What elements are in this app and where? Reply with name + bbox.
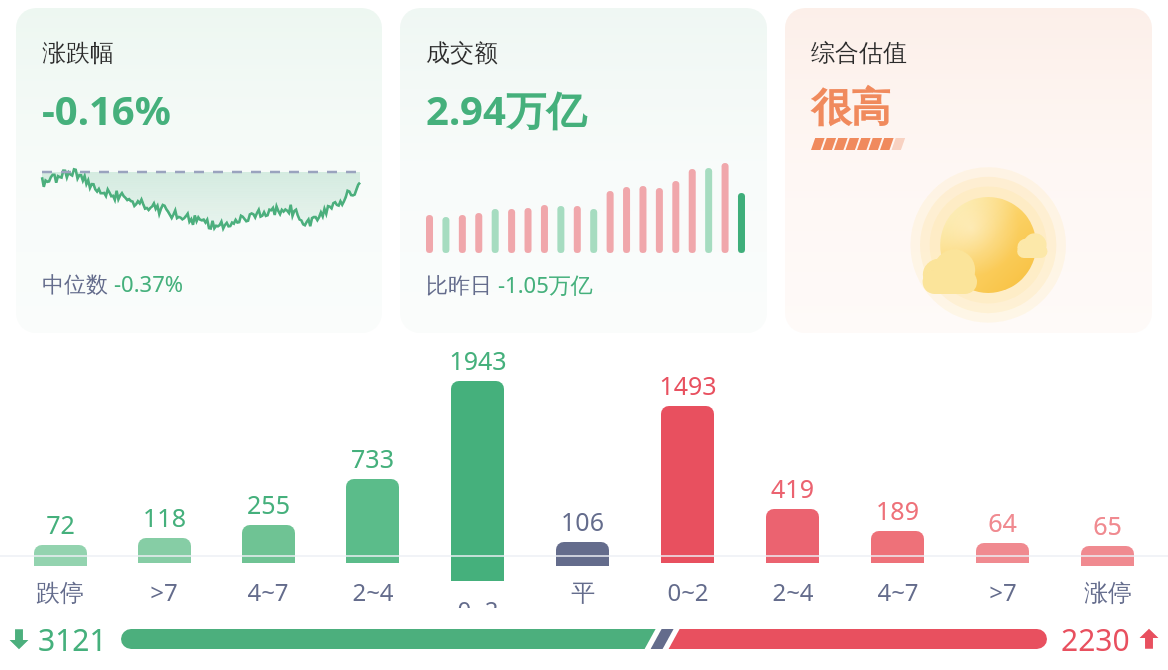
other: Down [8,628,30,650]
staticText: 64 [988,505,1017,539]
staticText: 跌停 [36,578,84,608]
staticText: 成交额 [426,38,498,68]
staticText: -1.05万亿 [498,269,593,299]
other: Up [1138,628,1160,650]
button[interactable]: 255 [216,343,320,608]
staticText: 2230 [1061,619,1130,660]
staticText: 2~4 [352,575,394,608]
staticText: 106 [561,504,604,538]
staticText: 733 [351,441,394,475]
staticText: >7 [150,575,178,608]
staticText: >7 [989,575,1017,608]
staticText: 419 [771,471,814,505]
staticText: 118 [143,500,186,534]
staticText: 72 [46,507,75,541]
staticText: 涨跌幅 [42,38,114,68]
staticText: 比昨日 [426,269,498,299]
button[interactable]: 419 [740,343,845,608]
staticText: 很高 [811,82,891,132]
staticText: -0.37% [114,268,184,298]
button[interactable]: 118 [112,343,216,608]
button[interactable]: 65 [1055,343,1160,608]
staticText: 255 [247,487,290,521]
staticText: 2~4 [772,575,814,608]
staticText: 1493 [659,368,717,402]
staticText: 4~7 [247,575,289,608]
staticText: 4~7 [877,575,919,608]
staticText: 2.94万亿 [426,82,586,137]
button[interactable]: 72 [8,343,112,608]
button[interactable]: 106 [530,343,635,608]
staticText: 综合估值 [811,38,907,68]
button[interactable]: 涨跌幅 [16,8,382,333]
staticText: 涨停 [1084,578,1132,608]
staticText: 0~2 [667,575,709,608]
staticText: -0.16% [42,82,171,136]
staticText: 189 [876,493,919,527]
button[interactable]: 成交额 [400,8,767,333]
button[interactable]: 1943 [425,343,530,608]
button[interactable]: 1493 [635,343,740,608]
staticText: 0~2 [457,593,499,608]
staticText: 平 [571,578,595,608]
staticText: 65 [1093,508,1122,542]
staticText: 中位数 [42,268,114,298]
button[interactable]: 733 [320,343,425,608]
button[interactable]: 综合估值 [785,8,1152,333]
button[interactable]: 64 [950,343,1055,608]
staticText: 3121 [38,619,107,660]
staticText: 1943 [449,343,507,377]
button[interactable]: Down [8,608,1160,670]
button[interactable]: 189 [845,343,950,608]
